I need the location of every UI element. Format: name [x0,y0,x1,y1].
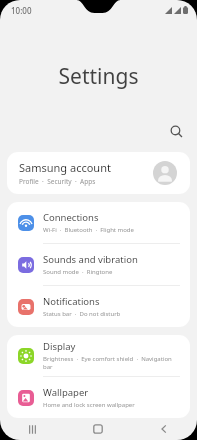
button[interactable]: Home [65,418,131,440]
button[interactable]: Back [131,418,197,440]
button[interactable]: Recent apps [0,418,65,440]
staticText: Connections [43,211,99,224]
staticText: Wallpaper [43,386,89,399]
button[interactable]: Sounds and vibration [7,244,190,285]
staticText: Sounds and vibration [43,253,138,266]
staticText: Wi-Fi · Bluetooth · Flight mode [43,226,134,234]
staticText: Samsung account [19,160,111,175]
button[interactable]: Connections [7,202,190,243]
staticText: Notifications [43,295,100,308]
staticText: Home and lock screen wallpaper [43,401,135,409]
staticText: Brightness · Eye comfort shield · Naviga… [43,355,180,371]
button[interactable]: Display [7,335,190,376]
staticText: Profile · Security · Apps [19,177,96,186]
button[interactable]: Samsung account [7,152,190,194]
staticText: Display [43,340,76,353]
staticText: Sound mode · Ringtone [43,268,113,276]
staticText: Settings [0,62,197,91]
button[interactable]: Search [163,118,189,144]
button[interactable]: Notifications [7,286,190,327]
staticText: Status bar · Do not disturb [43,310,121,318]
button[interactable]: Wallpaper [7,377,190,418]
staticText: 10:00 [11,5,32,16]
